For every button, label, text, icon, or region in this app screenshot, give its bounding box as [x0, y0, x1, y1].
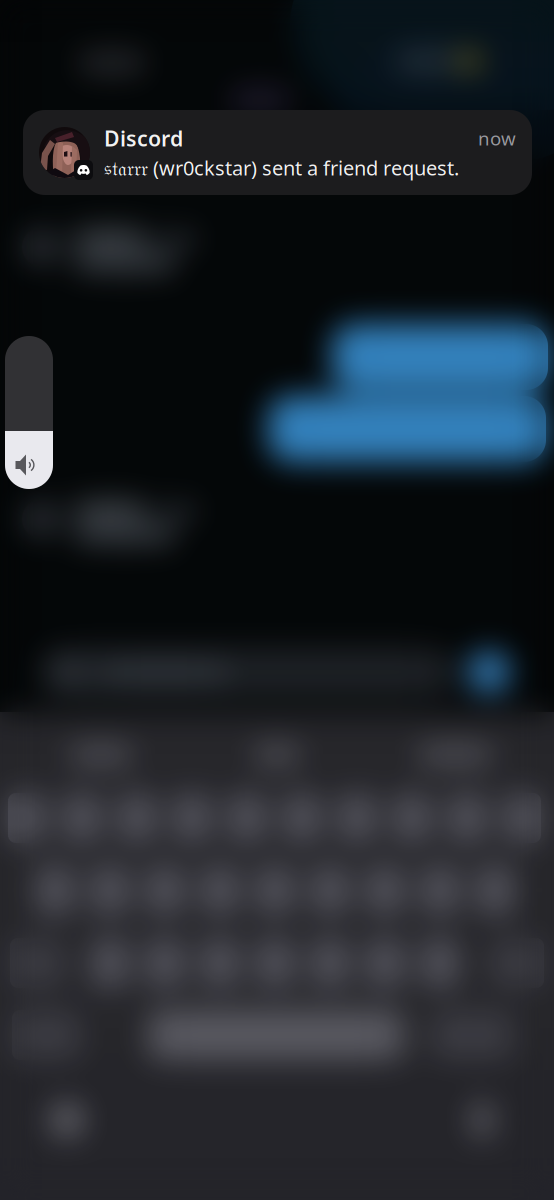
button[interactable]: Discord — [23, 110, 532, 195]
staticText: now — [478, 126, 516, 151]
staticText: 𝔰𝔱𝔞𝔯𝔯𝔯 (wr0ckstar) sent a friend request… — [104, 154, 459, 181]
staticText: Discord — [104, 124, 183, 152]
